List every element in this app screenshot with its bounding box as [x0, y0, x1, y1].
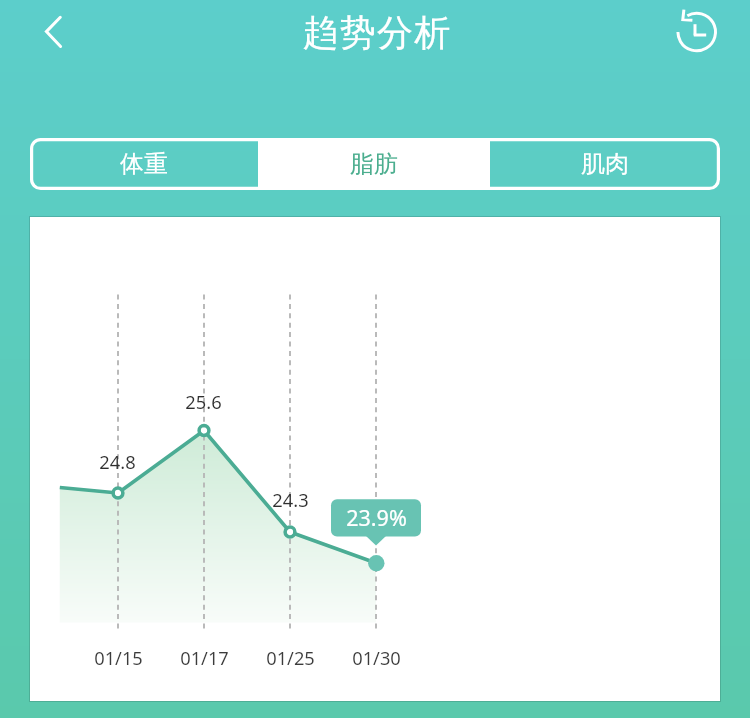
staticText: 23.9% — [346, 503, 407, 532]
staticText: 01/15 — [94, 645, 143, 670]
staticText: 24.8 — [99, 449, 136, 474]
button[interactable]: History — [670, 6, 722, 58]
staticText: 趋势分析 — [2, 10, 750, 55]
staticText: 01/25 — [266, 645, 315, 670]
button[interactable]: 体重 — [30, 138, 258, 190]
staticText: 01/30 — [352, 645, 401, 670]
staticText: 24.3 — [272, 487, 309, 512]
staticText: 01/17 — [180, 645, 229, 670]
button[interactable]: 脂肪 — [258, 138, 490, 190]
staticText: 肌肉 — [581, 149, 629, 179]
staticText: 脂肪 — [350, 149, 398, 179]
button[interactable]: 肌肉 — [490, 138, 720, 190]
button[interactable]: Back — [26, 6, 78, 58]
staticText: 25.6 — [185, 389, 222, 414]
staticText: 体重 — [120, 149, 168, 179]
